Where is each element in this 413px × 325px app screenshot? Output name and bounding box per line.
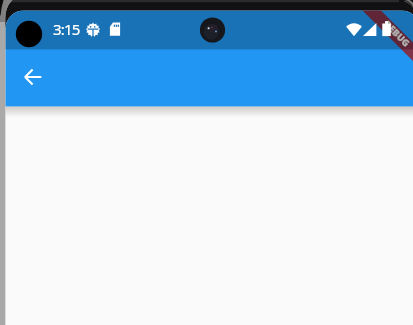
staticText: 3:15: [53, 19, 80, 39]
button[interactable]: Back: [11, 55, 55, 99]
